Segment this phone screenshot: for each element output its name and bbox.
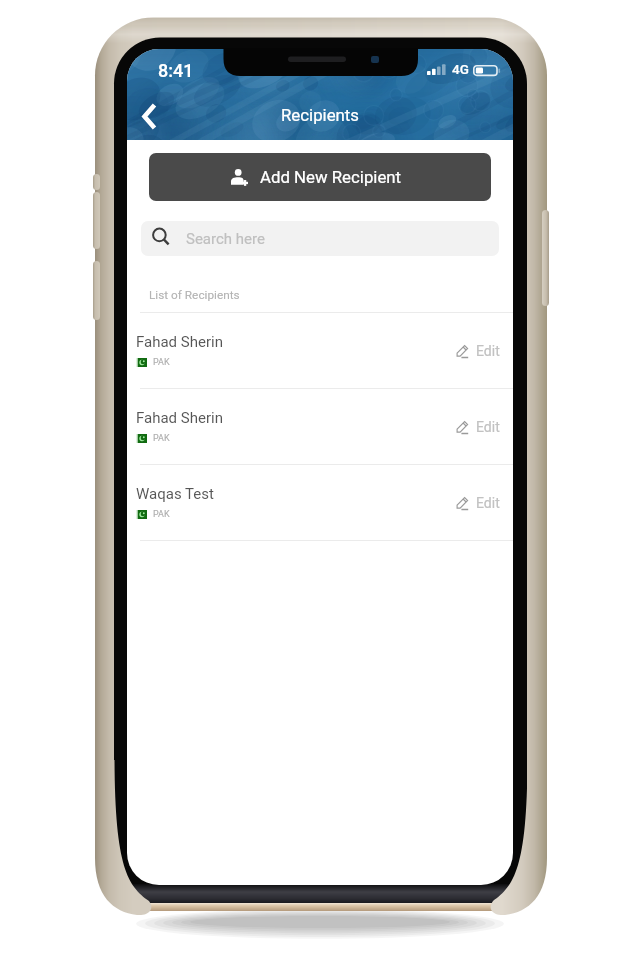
button[interactable]: Search here bbox=[141, 221, 499, 256]
staticText: Add New Recipient bbox=[260, 167, 402, 187]
staticText: Fahad Sherin bbox=[136, 333, 223, 351]
staticText: PAK bbox=[153, 509, 170, 520]
button[interactable]: Edit bbox=[454, 495, 500, 511]
staticText: Fahad Sherin bbox=[136, 409, 223, 427]
staticText: Edit bbox=[476, 343, 500, 359]
staticText: Search here bbox=[186, 230, 265, 248]
button[interactable]: Fahad Sherin bbox=[127, 313, 513, 388]
staticText: 4G bbox=[452, 61, 469, 77]
staticText: PAK bbox=[153, 357, 170, 368]
staticText: Edit bbox=[476, 419, 500, 435]
button[interactable]: Edit bbox=[454, 419, 500, 435]
staticText: Waqas Test bbox=[136, 485, 214, 503]
staticText: Edit bbox=[476, 495, 500, 511]
button[interactable]: Waqas Test bbox=[127, 465, 513, 540]
staticText: PAK bbox=[153, 433, 170, 444]
button[interactable]: Add New Recipient bbox=[149, 153, 491, 201]
button[interactable]: Fahad Sherin bbox=[127, 389, 513, 464]
staticText: 8:41 bbox=[158, 60, 194, 81]
button[interactable]: Back bbox=[132, 96, 172, 136]
staticText: List of Recipients bbox=[149, 288, 240, 302]
staticText: Recipients bbox=[127, 105, 513, 125]
button[interactable]: Edit bbox=[454, 343, 500, 359]
